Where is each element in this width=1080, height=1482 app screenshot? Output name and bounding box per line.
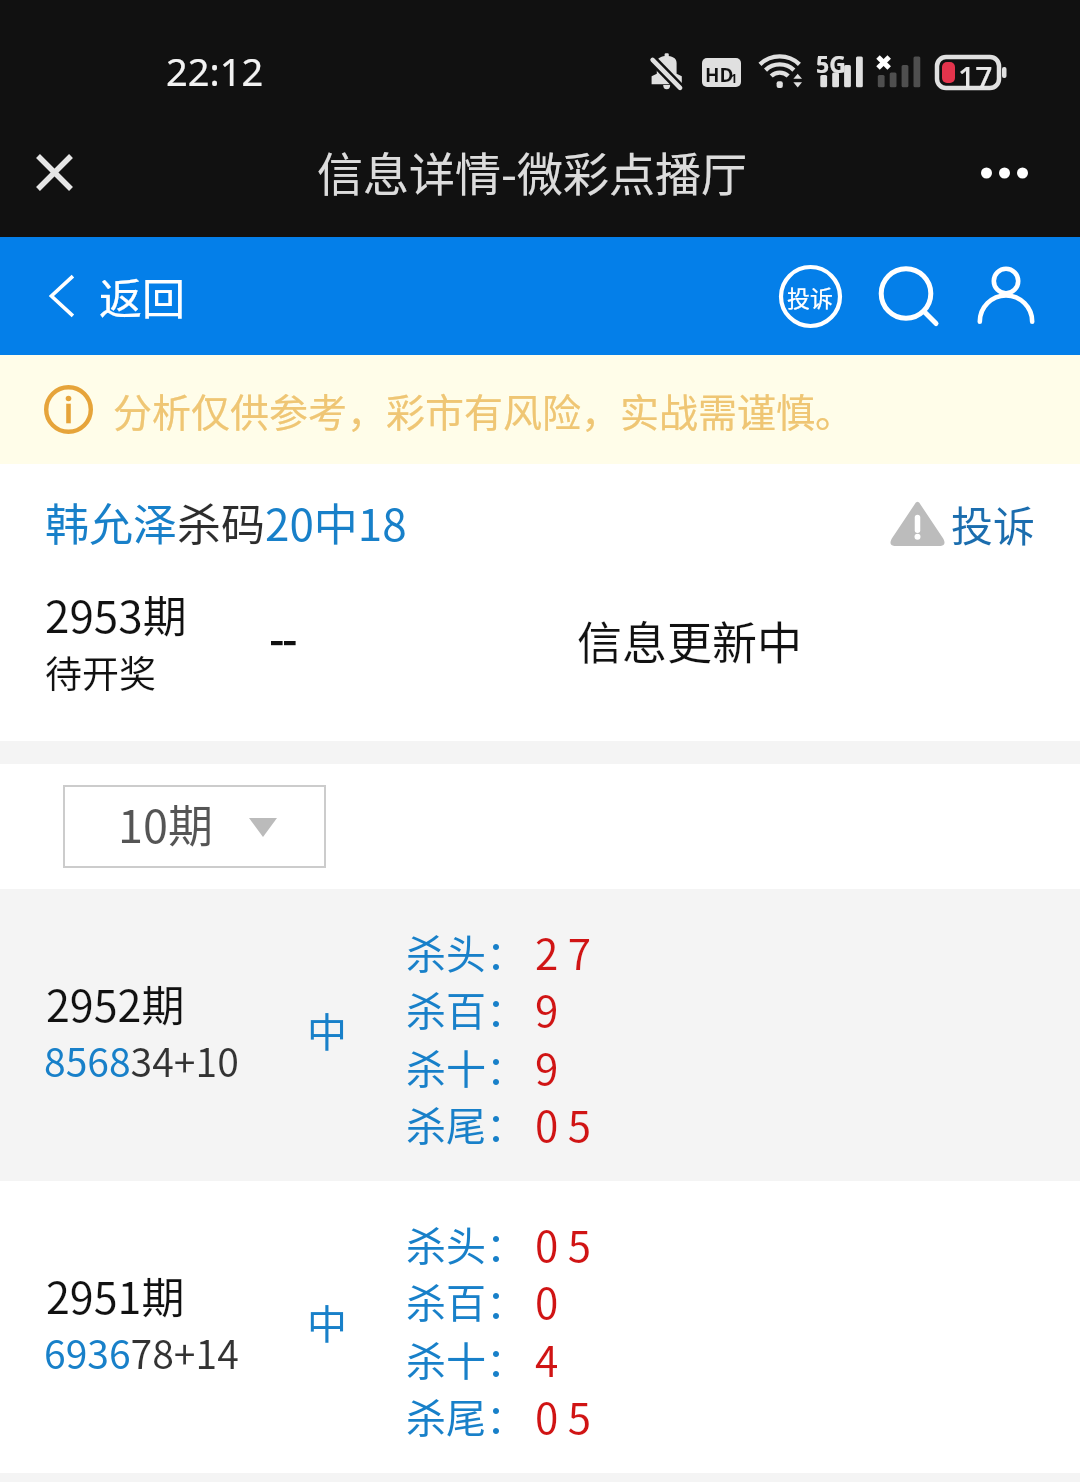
button[interactable]: 10期: [63, 785, 326, 868]
staticText: 9: [535, 1036, 559, 1097]
staticText: 杀百：: [406, 1272, 526, 1330]
staticText: 中: [307, 1001, 347, 1059]
staticText: 分析仅供参考，彩市有风险，实战需谨慎。: [113, 382, 855, 438]
staticText: 杀百：: [406, 980, 526, 1038]
button[interactable]: More options: [981, 156, 1028, 196]
button[interactable]: 投诉: [764, 250, 856, 342]
staticText: 返回: [99, 265, 185, 327]
staticText: 4: [535, 1328, 559, 1389]
button[interactable]: Close: [22, 140, 87, 205]
staticText: 2951期: [46, 1264, 185, 1326]
staticText: 9: [535, 978, 559, 1039]
staticText: 1: [730, 69, 738, 87]
staticText: 杀尾：: [406, 1387, 526, 1445]
staticText: 信息详情-微彩点播厅: [317, 138, 747, 205]
button[interactable]: Profile: [962, 252, 1050, 340]
staticText: 杀头：: [406, 1215, 526, 1273]
button[interactable]: Search: [862, 252, 950, 340]
staticText: 5G: [816, 48, 846, 79]
staticText: 中: [307, 1293, 347, 1351]
staticText: 17: [958, 57, 993, 88]
staticText: 22:12: [166, 45, 264, 97]
staticText: 2952期: [46, 972, 185, 1034]
staticText: 杀十：: [406, 1330, 526, 1388]
staticText: 杀尾：: [406, 1095, 526, 1153]
button[interactable]: 投诉: [885, 494, 1040, 554]
button[interactable]: 2951期: [0, 1181, 1080, 1473]
staticText: 0 5: [535, 1093, 592, 1154]
staticText: 0 5: [535, 1385, 592, 1446]
button[interactable]: 返回: [50, 256, 210, 336]
staticText: 693678+14: [44, 1324, 239, 1380]
staticText: 韩允泽杀码20中18: [45, 490, 407, 554]
staticText: 0 5: [535, 1213, 592, 1274]
staticText: 0: [535, 1270, 559, 1331]
staticText: 投诉: [787, 280, 833, 313]
staticText: 信息更新中: [577, 608, 803, 673]
staticText: 856834+10: [44, 1032, 239, 1088]
staticText: 杀十：: [406, 1038, 526, 1096]
staticText: 杀头：: [406, 923, 526, 981]
staticText: 投诉: [951, 493, 1036, 553]
staticText: 10期: [118, 791, 213, 856]
staticText: 2 7: [535, 921, 592, 982]
staticText: 2953期: [45, 582, 187, 646]
staticText: 待开奖: [45, 645, 156, 699]
staticText: HD: [705, 62, 734, 87]
button[interactable]: 2952期: [0, 889, 1080, 1181]
